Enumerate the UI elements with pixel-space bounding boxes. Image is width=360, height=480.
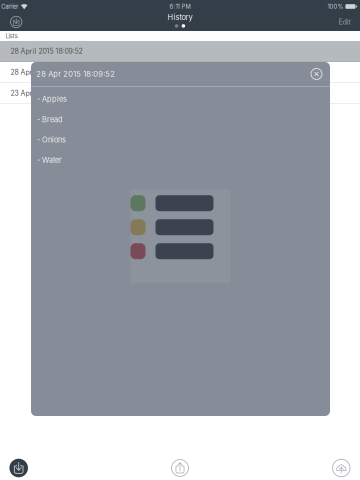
button[interactable]: Import xyxy=(3,13,30,31)
staticText: - Bread xyxy=(37,115,63,124)
button[interactable]: Upload to cloud xyxy=(327,454,355,480)
button[interactable]: 28 April 2015 17:33:11 xyxy=(0,62,360,83)
button[interactable]: 28 April 2015 18:09:52 xyxy=(0,41,360,62)
staticText: History xyxy=(167,13,192,22)
button[interactable]: Edit xyxy=(323,13,350,31)
staticText: 6:11 PM xyxy=(169,3,190,10)
staticText: - Apples xyxy=(37,95,67,104)
button[interactable]: Close xyxy=(307,65,325,83)
button[interactable]: 23 April 2015 11:41:03 xyxy=(0,83,360,104)
staticText: 100% xyxy=(328,3,344,10)
staticText: Carrier xyxy=(1,3,18,10)
staticText: - Water xyxy=(37,155,62,164)
staticText: 23 April 2015 11:41:03 xyxy=(10,89,80,97)
staticText: Edit xyxy=(338,18,350,26)
staticText: 28 Apr 2015 18:09:52 xyxy=(36,69,115,79)
staticText: Lists xyxy=(5,32,17,40)
staticText: - Onions xyxy=(37,135,66,144)
staticText: 28 April 2015 17:33:11 xyxy=(10,68,80,76)
staticText: 28 April 2015 18:09:52 xyxy=(10,47,82,55)
button[interactable]: Import xyxy=(5,454,33,480)
button[interactable]: Share xyxy=(166,454,194,480)
